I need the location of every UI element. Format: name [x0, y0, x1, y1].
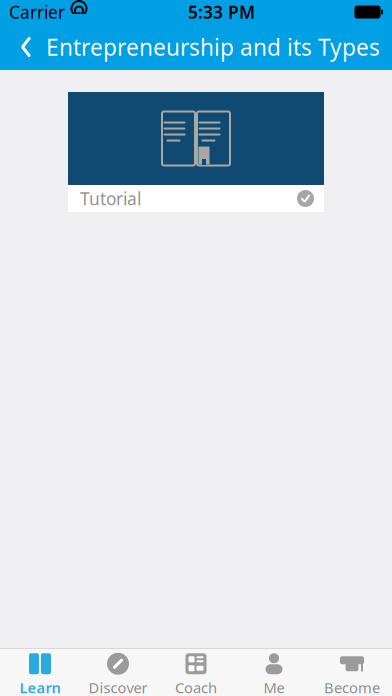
button[interactable]: Discover [79, 649, 157, 696]
button[interactable]: Tutorial [68, 92, 324, 212]
staticText: Learn [19, 678, 60, 696]
staticText: Me [263, 678, 284, 696]
staticText: Discover [88, 678, 147, 696]
staticText: Entrepreneurship and its Types [46, 32, 380, 62]
staticText: 5:33 PM [188, 0, 255, 23]
staticText: Tutorial [80, 187, 141, 210]
button[interactable]: Me [235, 649, 313, 696]
button[interactable]: Become [313, 649, 391, 696]
staticText: Become [324, 678, 380, 696]
button[interactable]: Learn [1, 649, 79, 696]
button[interactable]: Coach [157, 649, 235, 696]
staticText: Carrier [9, 0, 65, 23]
staticText: Coach [175, 678, 217, 696]
button[interactable]: Back [6, 25, 46, 69]
